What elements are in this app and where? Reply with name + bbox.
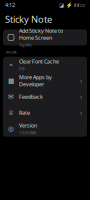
- staticText: Feedback: [19, 93, 43, 100]
- staticText: Clear Font Cache: [19, 58, 59, 65]
- staticText: ▩: [8, 77, 14, 84]
- staticText: 0 B: [19, 66, 25, 71]
- staticText: ✉: [8, 93, 14, 100]
- staticText: ›: [80, 92, 82, 101]
- staticText: Tap Me: [19, 42, 32, 48]
- staticText: ⌁: [9, 61, 13, 68]
- staticText: 1.5.0 (108): [19, 130, 36, 135]
- staticText: 4:12: [5, 1, 15, 9]
- staticText: Sticky Note: [5, 13, 52, 25]
- staticText: Version: [19, 122, 37, 129]
- staticText: More Apps by Developer: [19, 74, 52, 88]
- button[interactable]: ▩: [3, 73, 87, 89]
- staticText: Rate: [19, 109, 30, 116]
- button[interactable]: ♕: [3, 105, 87, 121]
- staticText: Add Sticky Note to Home Screen: [19, 27, 63, 41]
- button[interactable]: Add Sticky Note to Home Screen: [3, 29, 87, 45]
- staticText: ◪ ⚡ ıl ıl ▭: [59, 1, 85, 9]
- staticText: ›: [80, 108, 82, 117]
- button[interactable]: ◎: [3, 121, 87, 137]
- button[interactable]: ⌁: [3, 57, 87, 73]
- staticText: ›: [80, 76, 82, 85]
- staticText: ◎: [8, 125, 14, 132]
- button[interactable]: ✉: [3, 89, 87, 105]
- staticText: MORE: [6, 49, 17, 55]
- staticText: ♕: [8, 109, 14, 116]
